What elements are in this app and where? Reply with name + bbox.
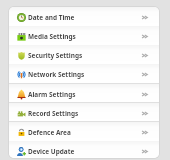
staticText: Alarm Settings: [28, 90, 76, 99]
button[interactable]: Alarm Settings: [9, 84, 159, 103]
staticText: Date and Time: [28, 13, 75, 22]
button[interactable]: Date and Time: [9, 7, 159, 26]
staticText: Security Settings: [28, 51, 83, 60]
staticText: Record Settings: [28, 109, 79, 118]
staticText: Media Settings: [28, 32, 76, 41]
button[interactable]: Device Update: [9, 141, 159, 158]
button[interactable]: Network Settings: [9, 64, 159, 83]
button[interactable]: Record Settings: [9, 103, 159, 122]
button[interactable]: Security Settings: [9, 45, 159, 64]
staticText: Network Settings: [28, 70, 85, 79]
button[interactable]: Media Settings: [9, 26, 159, 45]
staticText: Device Update: [28, 147, 75, 156]
staticText: Defence Area: [28, 128, 71, 137]
button[interactable]: Defence Area: [9, 122, 159, 141]
